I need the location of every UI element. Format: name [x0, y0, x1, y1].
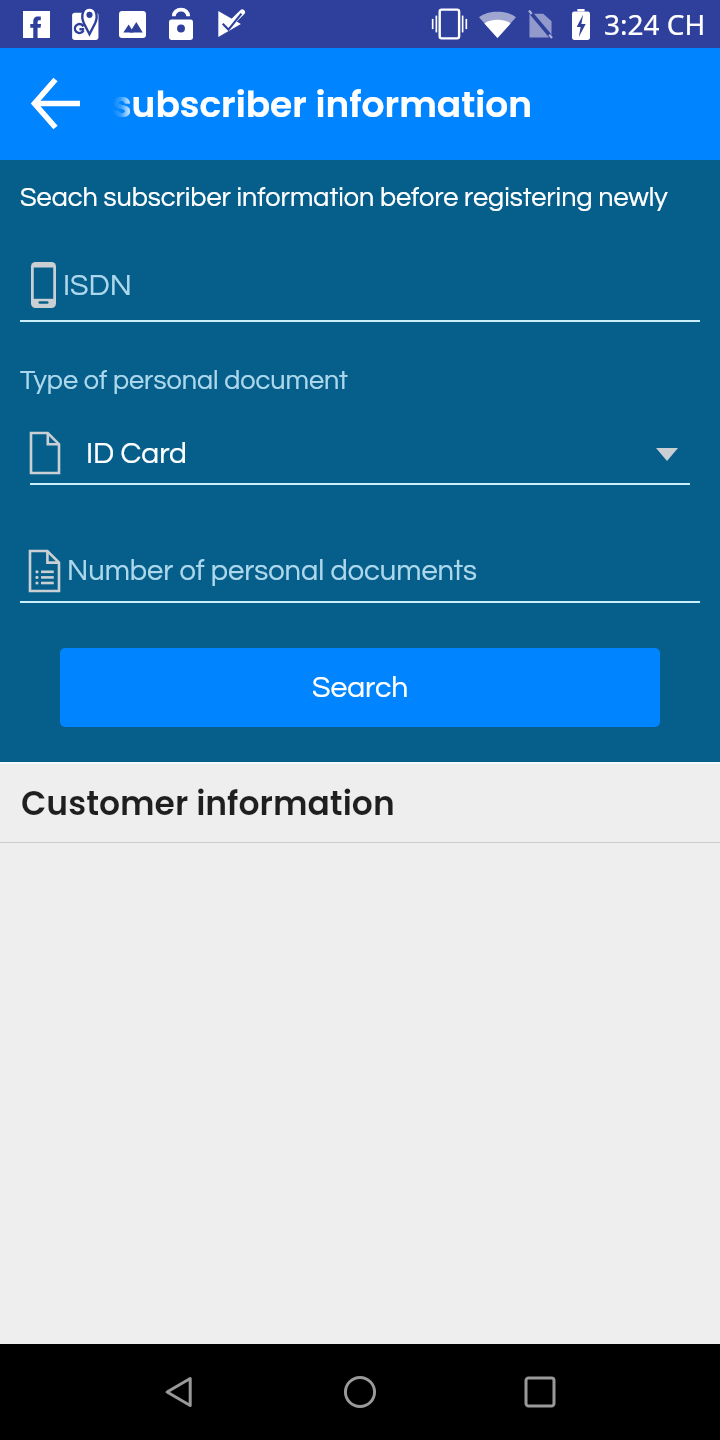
button[interactable]: ISDN: [31, 256, 720, 314]
staticText: Number of personal documents: [67, 556, 478, 586]
button[interactable]: ID Card: [31, 425, 678, 481]
button[interactable]: Search: [60, 648, 660, 727]
staticText: ID Card: [86, 438, 187, 469]
staticText: ISDN: [63, 270, 132, 301]
staticText: Type of personal document: [20, 367, 348, 395]
staticText: Seach subscriber information before regi…: [20, 184, 668, 212]
button[interactable]: Recent apps: [510, 1362, 570, 1422]
button[interactable]: Navigate up: [8, 56, 104, 152]
button[interactable]: Home: [330, 1362, 390, 1422]
button[interactable]: Back: [150, 1362, 210, 1422]
staticText: subscriber information: [112, 79, 533, 129]
staticText: 3:24 CH: [604, 5, 706, 43]
button[interactable]: Number of personal documents: [30, 543, 720, 599]
staticText: Customer information: [21, 780, 395, 826]
staticText: Search: [312, 672, 409, 703]
